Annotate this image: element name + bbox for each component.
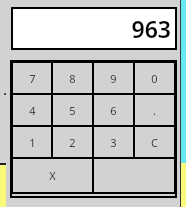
staticText: 5 <box>69 103 76 118</box>
button[interactable]: 5 <box>52 94 93 126</box>
staticText: C <box>151 135 158 150</box>
button[interactable]: 4 <box>12 94 52 126</box>
staticText: 4 <box>29 103 36 118</box>
button[interactable]: 7 <box>12 62 52 94</box>
staticText: 0 <box>151 71 158 86</box>
button[interactable]: Blank key <box>93 158 175 193</box>
staticText: . <box>153 103 156 118</box>
button[interactable]: . <box>134 94 175 126</box>
staticText: 6 <box>110 103 117 118</box>
staticText: 8 <box>69 71 76 86</box>
button[interactable]: C <box>134 126 175 158</box>
staticText: 2 <box>69 135 76 150</box>
button[interactable]: 2 <box>52 126 93 158</box>
staticText: 3 <box>110 135 117 150</box>
staticText: 9 <box>110 71 117 86</box>
button[interactable]: 1 <box>12 126 52 158</box>
button[interactable]: 0 <box>134 62 175 94</box>
staticText: X <box>49 168 56 183</box>
button[interactable]: 9 <box>93 62 134 94</box>
button[interactable]: 6 <box>93 94 134 126</box>
button[interactable]: 8 <box>52 62 93 94</box>
staticText: 7 <box>29 71 36 86</box>
button[interactable]: X <box>12 158 93 193</box>
button[interactable]: 963 <box>12 8 176 49</box>
button[interactable]: 3 <box>93 126 134 158</box>
staticText: 963 <box>131 13 171 44</box>
staticText: 1 <box>29 135 36 150</box>
